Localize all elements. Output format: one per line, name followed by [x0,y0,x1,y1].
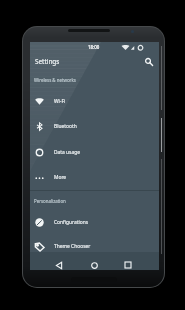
button[interactable]: Wi-Fi [30,89,159,114]
button[interactable]: More [30,165,159,190]
staticText: More [54,174,67,181]
button[interactable]: Configurations [30,210,159,235]
button[interactable]: Data usage [30,140,159,165]
staticText: Personalization [34,198,66,204]
staticText: Configurations [54,219,89,226]
staticText: Settings [35,57,60,66]
button[interactable]: Theme Chooser [30,234,159,259]
staticText: Theme Chooser [54,243,91,250]
staticText: Wi-Fi [54,98,66,105]
staticText: Bluetooth [54,123,77,130]
staticText: Wireless & networks [34,77,76,83]
button[interactable]: Search [140,53,157,70]
button[interactable]: Home [86,257,102,273]
staticText: Data usage [54,149,80,156]
button[interactable]: Bluetooth [30,114,159,139]
button[interactable]: Back [51,257,67,273]
staticText: 18:00 [88,44,100,50]
button[interactable]: Recents [120,257,136,273]
